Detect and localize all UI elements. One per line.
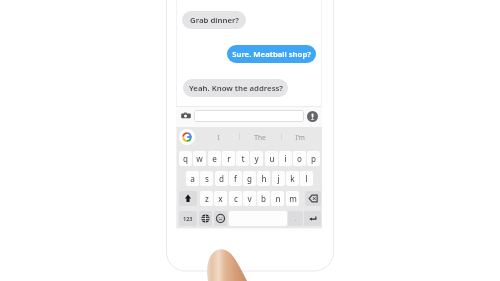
- button[interactable]: d: [215, 171, 228, 186]
- staticText: c: [234, 193, 238, 204]
- staticText: I: [217, 133, 220, 142]
- button[interactable]: v: [243, 191, 256, 206]
- button[interactable]: s: [200, 171, 213, 186]
- button[interactable]: Grab dinner?: [182, 11, 246, 29]
- staticText: y: [254, 153, 259, 164]
- staticText: p: [311, 153, 316, 164]
- button[interactable]: Shift: [179, 191, 197, 206]
- button[interactable]: [194, 110, 304, 122]
- button[interactable]: l: [300, 171, 313, 186]
- staticText: n: [275, 193, 281, 204]
- button[interactable]: f: [229, 171, 242, 186]
- button[interactable]: t: [236, 151, 249, 166]
- staticText: Yeah. Know the address?: [189, 83, 283, 94]
- staticText: h: [261, 173, 267, 184]
- button[interactable]: Enter: [304, 211, 321, 226]
- staticText: Sure. Meatball shop?: [232, 49, 311, 60]
- staticText: Grab dinner?: [190, 15, 239, 26]
- button[interactable]: I'm: [292, 130, 308, 144]
- staticText: w: [196, 153, 203, 164]
- button[interactable]: m: [286, 191, 299, 206]
- staticText: b: [261, 193, 266, 204]
- button[interactable]: y: [250, 151, 263, 166]
- staticText: s: [205, 173, 209, 184]
- button[interactable]: o: [293, 151, 306, 166]
- button[interactable]: The: [252, 130, 268, 144]
- button[interactable]: h: [257, 171, 270, 186]
- button[interactable]: e: [208, 151, 221, 166]
- button[interactable]: Backspace: [305, 191, 321, 206]
- button[interactable]: Sure. Meatball shop?: [227, 45, 316, 63]
- staticText: v: [247, 193, 252, 204]
- button[interactable]: w: [193, 151, 206, 166]
- staticText: I'm: [295, 133, 305, 142]
- button[interactable]: Emoji: [214, 211, 227, 226]
- button[interactable]: Voice input: [307, 111, 318, 122]
- button[interactable]: p: [307, 151, 320, 166]
- button[interactable]: c: [229, 191, 242, 206]
- staticText: k: [290, 173, 295, 184]
- button[interactable]: r: [222, 151, 235, 166]
- button[interactable]: n: [271, 191, 284, 206]
- staticText: e: [212, 153, 217, 164]
- button[interactable]: i: [279, 151, 292, 166]
- button[interactable]: q: [179, 151, 192, 166]
- staticText: q: [183, 153, 188, 164]
- button[interactable]: 123: [179, 211, 197, 226]
- staticText: m: [289, 193, 297, 204]
- button[interactable]: k: [286, 171, 299, 186]
- staticText: The: [254, 133, 266, 142]
- staticText: l: [305, 173, 308, 184]
- button[interactable]: x: [214, 191, 227, 206]
- button[interactable]: b: [257, 191, 270, 206]
- button[interactable]: j: [272, 171, 285, 186]
- staticText: 123: [183, 215, 193, 222]
- button[interactable]: Change language: [199, 211, 212, 226]
- staticText: .: [295, 215, 297, 223]
- staticText: i: [284, 153, 287, 164]
- button[interactable]: z: [200, 191, 213, 206]
- staticText: x: [218, 193, 223, 204]
- button[interactable]: I: [210, 130, 226, 144]
- staticText: a: [190, 173, 195, 184]
- button[interactable]: a: [186, 171, 199, 186]
- button[interactable]: Yeah. Know the address?: [183, 79, 288, 97]
- staticText: z: [205, 193, 209, 204]
- staticText: d: [219, 173, 224, 184]
- staticText: g: [247, 173, 252, 184]
- staticText: u: [269, 153, 275, 164]
- staticText: t: [241, 153, 245, 164]
- staticText: o: [297, 153, 302, 164]
- button[interactable]: g: [243, 171, 256, 186]
- staticText: r: [227, 153, 231, 164]
- button[interactable]: Google: [179, 129, 195, 145]
- button[interactable]: u: [265, 151, 278, 166]
- staticText: f: [234, 173, 237, 184]
- staticText: j: [277, 173, 280, 184]
- button[interactable]: Camera: [181, 111, 191, 121]
